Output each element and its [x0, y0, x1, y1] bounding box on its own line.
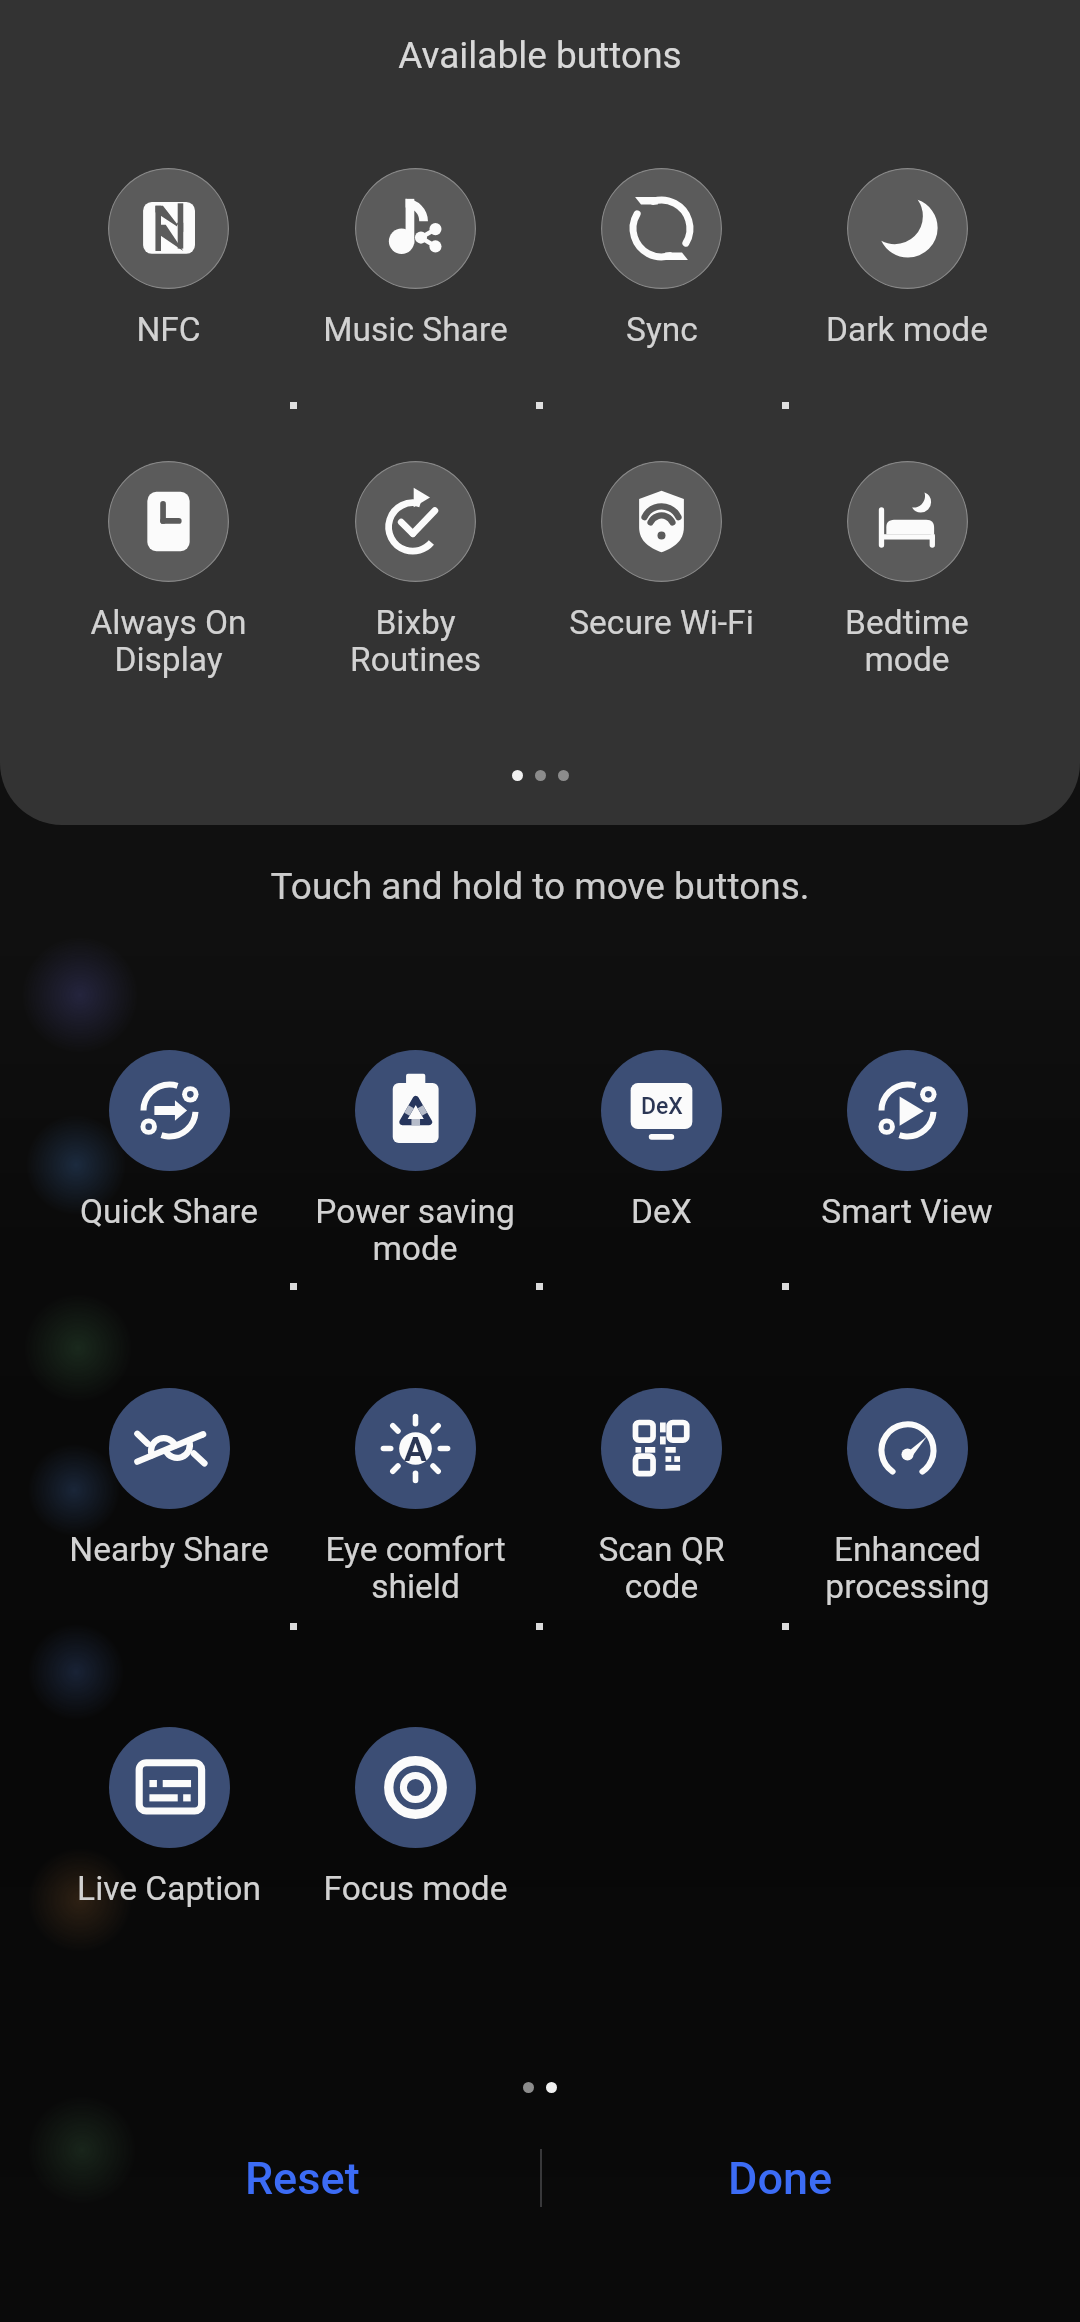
staticText: Available buttons	[0, 34, 1080, 77]
button[interactable]: Done	[542, 2128, 1018, 2228]
staticText: Quick Share	[80, 1192, 258, 1231]
button[interactable]: Quick Share	[80, 1050, 258, 1231]
button[interactable]: Eye comfort shield	[325, 1388, 506, 1606]
staticText: Live Caption	[77, 1869, 261, 1908]
staticText: Nearby Share	[69, 1530, 269, 1569]
button[interactable]: Smart View	[821, 1050, 993, 1231]
button[interactable]: NFC	[108, 168, 229, 349]
staticText: Always On Display	[90, 603, 247, 679]
staticText: A	[404, 1429, 427, 1469]
button[interactable]: Secure Wi-Fi	[569, 461, 754, 642]
button[interactable]: Sync	[601, 168, 722, 349]
staticText: NFC	[136, 310, 201, 349]
staticText: Done	[728, 2152, 833, 2205]
staticText: Touch and hold to move buttons.	[0, 865, 1080, 908]
button[interactable]: Always On Display	[90, 461, 247, 679]
staticText: Focus mode	[323, 1869, 508, 1908]
button[interactable]: Reset	[64, 2128, 540, 2228]
button[interactable]: Dark mode	[826, 168, 988, 349]
button[interactable]: Music Share	[323, 168, 508, 349]
button[interactable]: Focus mode	[323, 1727, 508, 1908]
staticText: Sync	[626, 310, 698, 349]
button[interactable]: Live Caption	[77, 1727, 261, 1908]
staticText: Power saving mode	[315, 1192, 515, 1268]
staticText: DeX	[641, 1093, 683, 1120]
staticText: Enhanced processing	[825, 1530, 990, 1606]
button[interactable]: DeX	[601, 1050, 722, 1231]
staticText: Bixby Routines	[350, 603, 481, 679]
staticText: Secure Wi-Fi	[569, 603, 754, 642]
button[interactable]: Nearby Share	[69, 1388, 269, 1569]
staticText: Scan QR code	[598, 1530, 725, 1606]
button[interactable]: Power saving mode	[315, 1050, 515, 1268]
staticText: Bedtime mode	[845, 603, 969, 679]
staticText: Smart View	[821, 1192, 993, 1231]
staticText: Dark mode	[826, 310, 988, 349]
button[interactable]: Enhanced processing	[825, 1388, 990, 1606]
button[interactable]: Bixby Routines	[350, 461, 481, 679]
staticText: DeX	[631, 1192, 692, 1231]
staticText: Reset	[245, 2152, 360, 2205]
button[interactable]: Scan QR code	[598, 1388, 725, 1606]
staticText: Music Share	[323, 310, 508, 349]
staticText: Eye comfort shield	[325, 1530, 506, 1606]
button[interactable]: Bedtime mode	[845, 461, 969, 679]
